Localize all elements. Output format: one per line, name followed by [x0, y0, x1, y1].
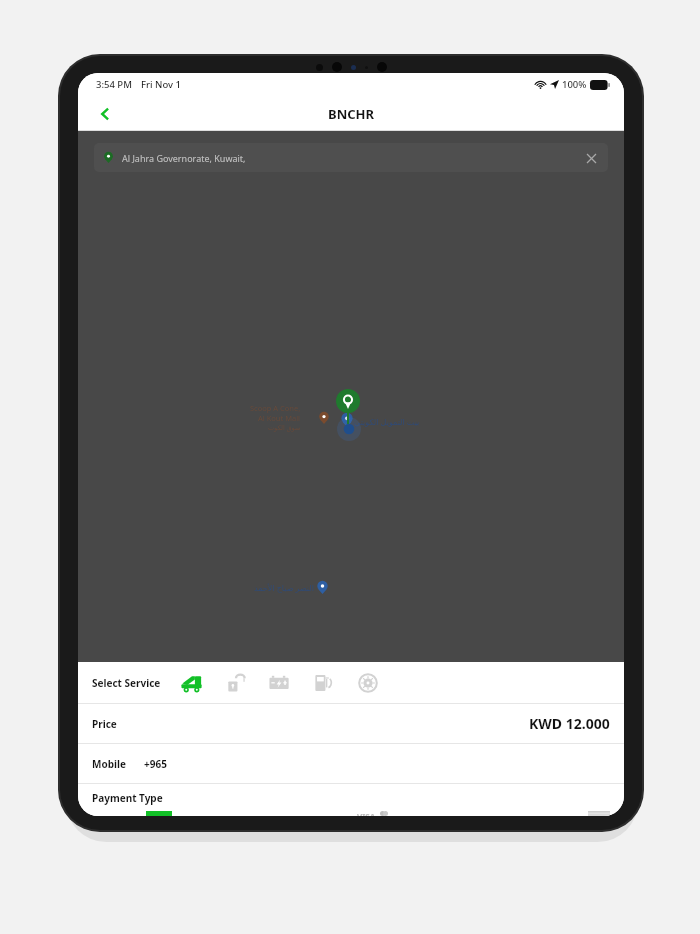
- button[interactable]: Mobile: [92, 744, 624, 783]
- button[interactable]: Back: [88, 97, 122, 131]
- staticText: +965: [144, 757, 167, 771]
- staticText: 100%: [562, 78, 587, 91]
- staticText: Payment Type: [92, 791, 163, 805]
- staticText: VISA: [357, 811, 376, 816]
- staticText: Al Kout Mall: [258, 413, 301, 423]
- button[interactable]: Clear: [583, 150, 599, 166]
- button[interactable]: Tow truck: [179, 672, 205, 694]
- staticText: بيت التمويل الكويتي: [354, 416, 420, 427]
- staticText: Fri Nov 1: [141, 78, 181, 91]
- staticText: Scoop A Cone,: [250, 403, 301, 413]
- button[interactable]: Fuel: [311, 672, 337, 694]
- staticText: Al Jahra Governorate, Kuwait,: [122, 152, 583, 164]
- staticText: سوق الكوت: [268, 423, 301, 432]
- staticText: KWD 12.000: [529, 714, 610, 733]
- button[interactable]: Tire: [355, 672, 381, 694]
- staticText: 3:54 PM: [96, 78, 132, 91]
- button[interactable]: Lockout: [223, 672, 249, 694]
- staticText: النصر صباح الأحمد: [254, 582, 314, 593]
- staticText: Select Service: [92, 676, 161, 690]
- staticText: Price: [92, 717, 117, 731]
- button[interactable]: Battery: [267, 672, 293, 694]
- staticText: Mobile: [92, 757, 126, 771]
- staticText: BNCHR: [328, 105, 375, 123]
- button[interactable]: Price: [92, 704, 610, 743]
- button[interactable]: Al Jahra Governorate, Kuwait,: [94, 143, 608, 172]
